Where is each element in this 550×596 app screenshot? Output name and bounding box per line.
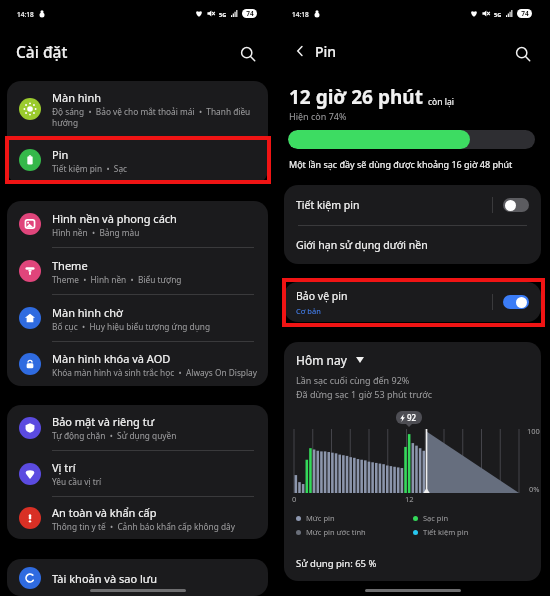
staticText: Vị trí [52, 460, 76, 475]
button[interactable]: Giới hạn sử dụng dưới nền [284, 226, 541, 264]
button[interactable]: Bảo vệ pin [284, 282, 541, 322]
staticText: Theme • Hình nền • Biểu tượng [52, 274, 182, 285]
staticText: An toàn và khẩn cấp [52, 505, 157, 520]
staticText: Hình nền • Bảng màu [52, 227, 140, 238]
staticText: Khóa màn hình và sinh trắc học • Always … [52, 367, 258, 378]
staticText: Độ sáng • Bảo vệ cho mắt thoải mái • Tha… [52, 106, 251, 128]
button[interactable]: An toàn và khẩn cấp [7, 497, 268, 539]
staticText: Tiết kiệm pin [423, 527, 469, 537]
staticText: Pin [315, 42, 337, 61]
staticText: Lần sạc cuối cùng đến 92% [296, 374, 410, 386]
button[interactable]: Bảo mật và riêng tư [7, 405, 268, 451]
button[interactable]: Màn hình khóa và AOD [7, 342, 268, 386]
staticText: Màn hình chờ [52, 305, 123, 320]
staticText: Thông tin y tế • Cảnh báo khẩn cấp không… [52, 521, 235, 532]
button[interactable]: Theme [7, 248, 268, 295]
staticText: 12 giờ 26 phút [289, 84, 423, 110]
staticText: Sạc pin [423, 513, 449, 523]
staticText: 74 [521, 9, 529, 17]
staticText: Yêu cầu vị trí [52, 476, 102, 487]
staticText: 12 [405, 494, 414, 504]
staticText: Cài đặt [16, 41, 68, 62]
staticText: Tài khoản và sao lưu [52, 571, 157, 586]
staticText: 5G [494, 11, 502, 18]
staticText: 92 [407, 412, 417, 423]
button[interactable]: Search [509, 40, 537, 68]
button[interactable]: Pin [7, 136, 268, 184]
staticText: Hôm nay [296, 352, 347, 368]
button[interactable]: Tài khoản và sao lưu [7, 559, 268, 596]
staticText: Cơ bản [296, 306, 321, 316]
staticText: 74 [246, 9, 254, 17]
button[interactable]: Màn hình [7, 81, 268, 136]
staticText: Giới hạn sử dụng dưới nền [296, 238, 428, 252]
staticText: Đã dừng sạc 1 giờ 53 phút trước [296, 388, 433, 400]
button[interactable]: Search [234, 40, 262, 68]
staticText: 14:18 [292, 10, 309, 19]
staticText: Pin [52, 147, 69, 162]
staticText: Bố cục • Huy hiệu biểu tượng ứng dụng [52, 321, 211, 332]
button[interactable]: Tiết kiệm pin [284, 185, 541, 225]
staticText: còn lại [428, 96, 454, 108]
staticText: 0% [529, 484, 540, 494]
button[interactable]: Toggle on [503, 295, 529, 309]
staticText: Màn hình khóa và AOD [52, 351, 171, 366]
staticText: Một lần sạc đầy sẽ dùng được khoảng 16 g… [289, 158, 513, 170]
staticText: Tự động chặn • Sử dụng quyền [52, 430, 177, 441]
staticText: Tiết kiệm pin [296, 198, 360, 212]
button[interactable]: Hình nền và phong cách [7, 201, 268, 248]
button[interactable]: Hôm nay [296, 352, 364, 368]
staticText: Màn hình [52, 90, 102, 105]
button[interactable]: Toggle off [503, 198, 529, 212]
button[interactable]: Back [285, 36, 315, 66]
staticText: Hình nền và phong cách [52, 211, 177, 226]
staticText: Mức pin [306, 513, 335, 523]
button[interactable]: Màn hình chờ [7, 295, 268, 342]
staticText: Hiện còn 74% [289, 110, 347, 122]
staticText: 100 [527, 426, 540, 436]
staticText: 5G [219, 11, 227, 18]
staticText: 0 [292, 494, 297, 504]
staticText: Sử dụng pin: 65 % [296, 557, 377, 570]
staticText: Bảo vệ pin [296, 289, 348, 303]
staticText: Mức pin ước tính [306, 527, 366, 537]
staticText: Bảo mật và riêng tư [52, 414, 155, 429]
staticText: Theme [52, 258, 88, 273]
staticText: 14:18 [17, 10, 34, 19]
button[interactable]: Vị trí [7, 451, 268, 497]
staticText: Tiết kiệm pin • Sạc [52, 163, 128, 174]
